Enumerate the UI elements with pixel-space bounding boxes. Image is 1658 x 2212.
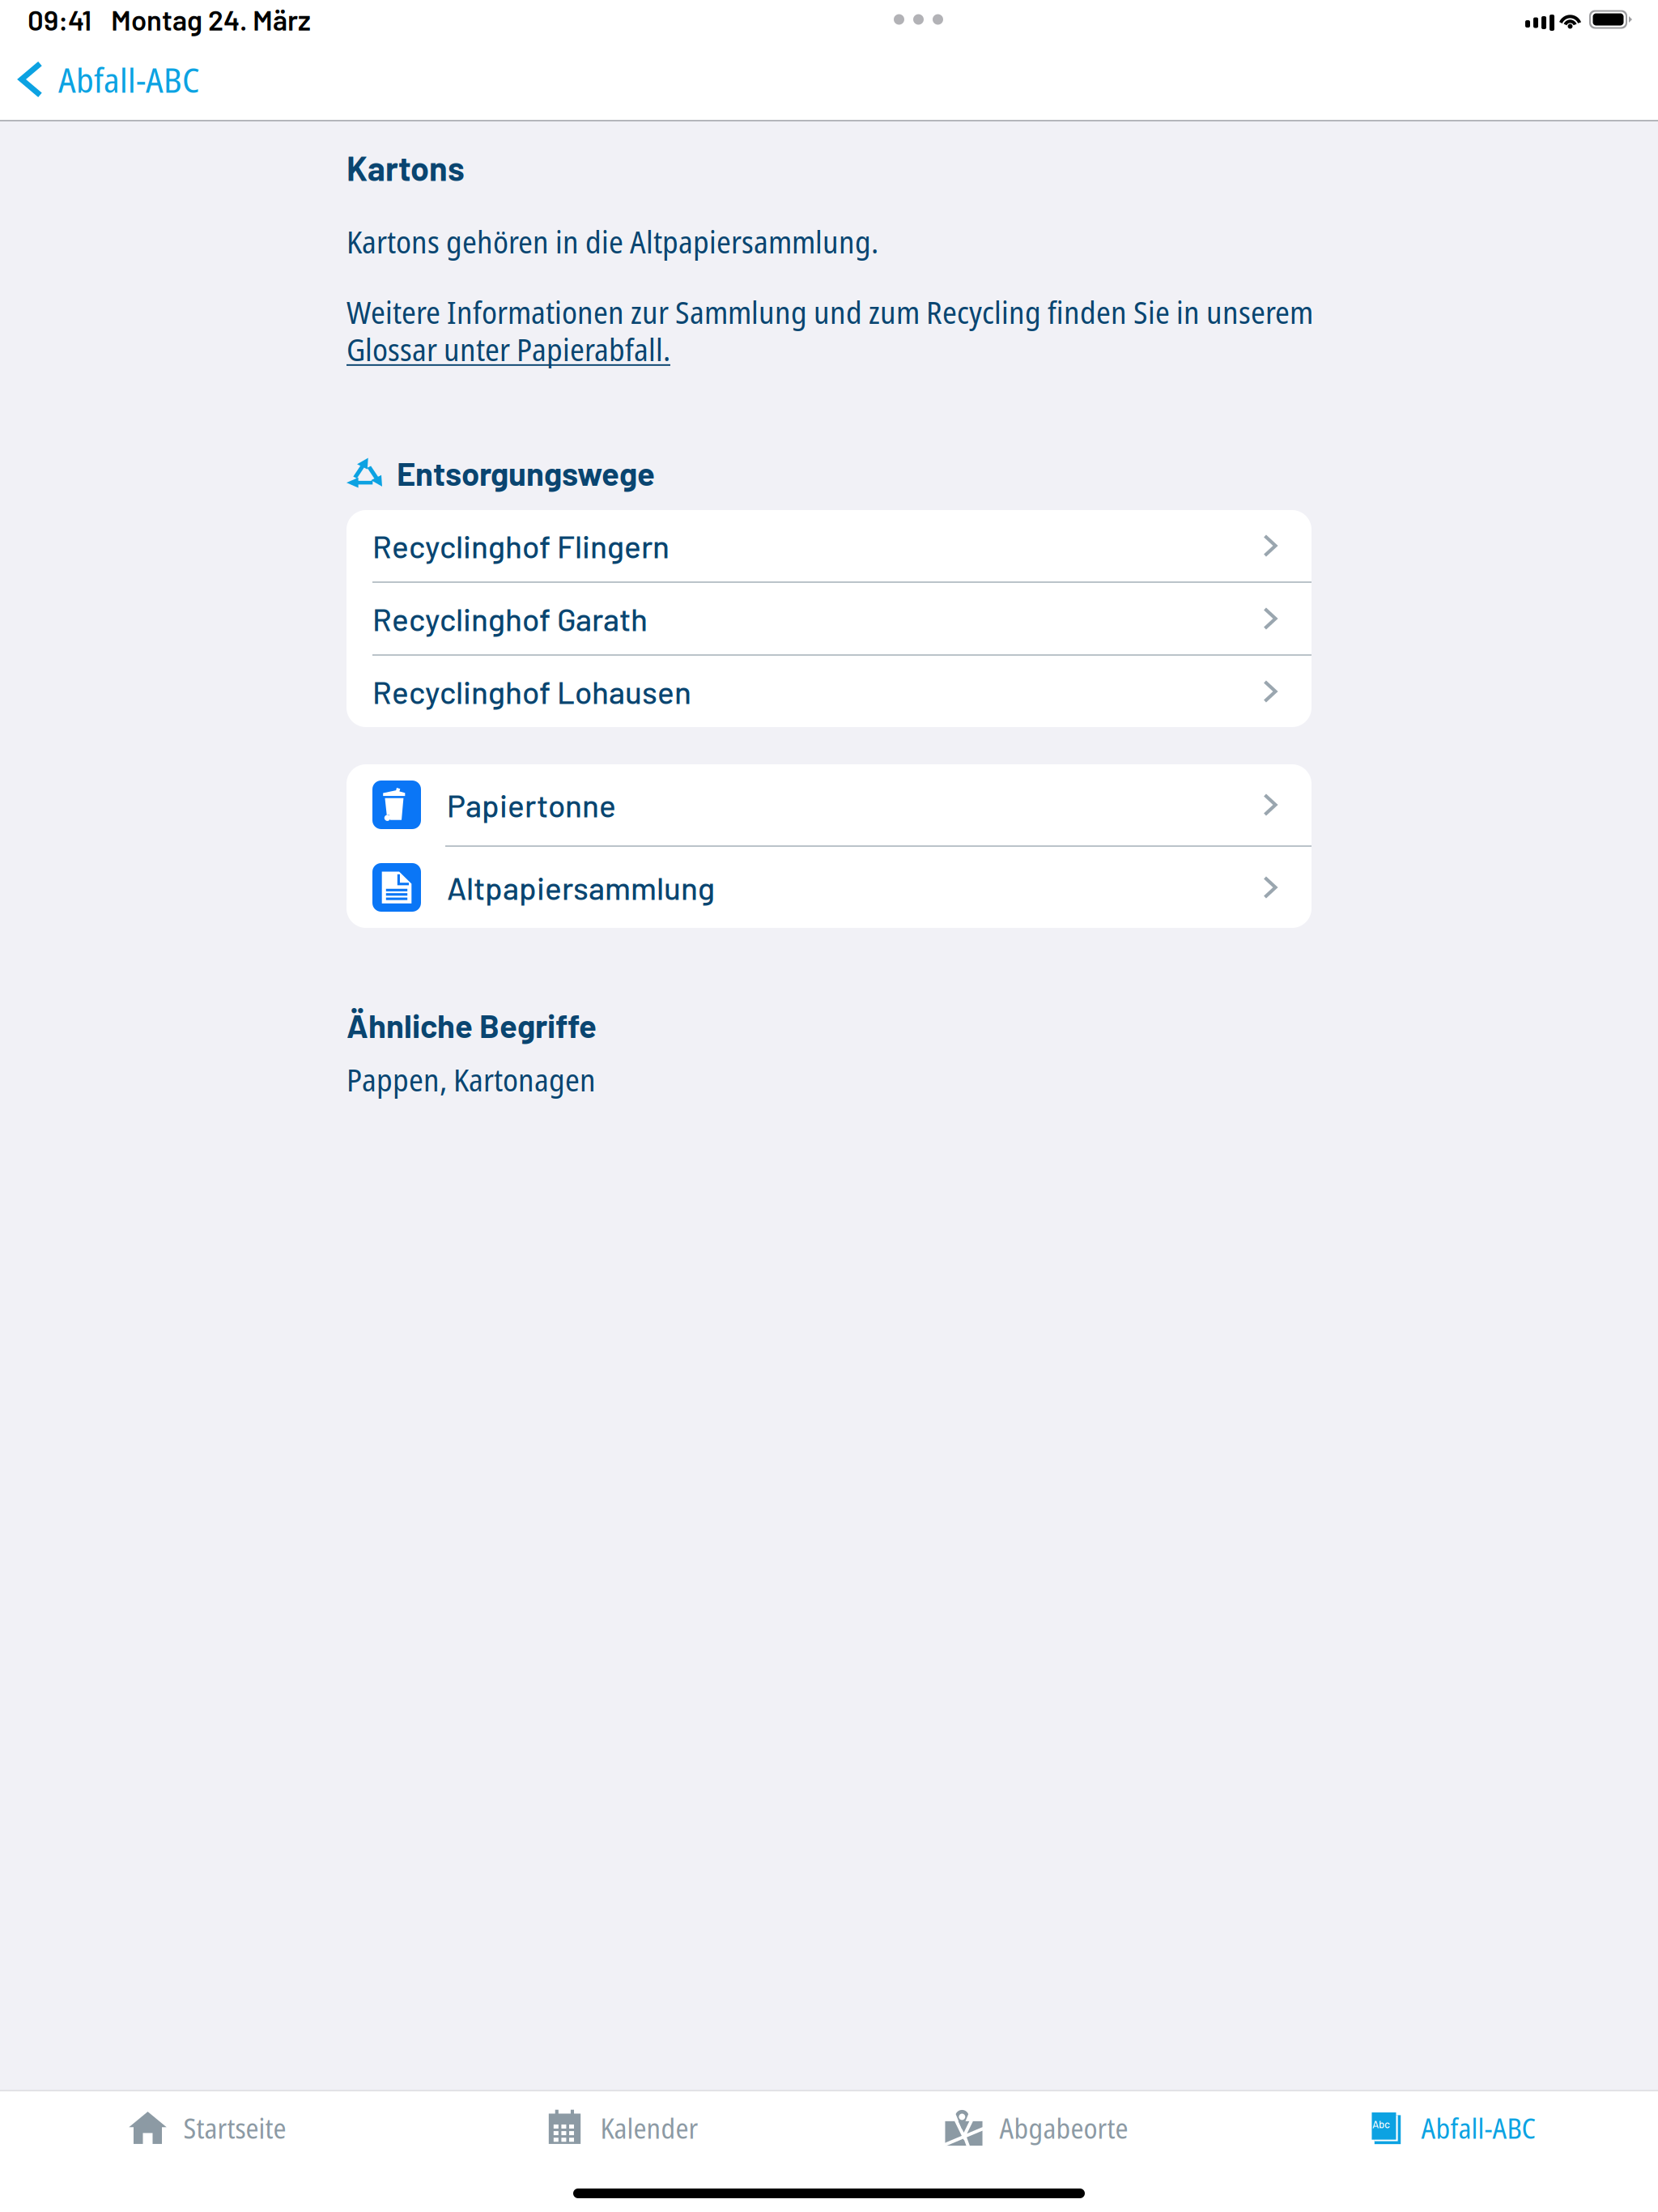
button[interactable]: Recyclinghof Flingern bbox=[346, 510, 1312, 581]
button[interactable]: Kalender bbox=[414, 2091, 829, 2164]
staticText: Entsorgungswege bbox=[397, 453, 655, 492]
staticText: Abc bbox=[1372, 2118, 1390, 2130]
staticText: Weitere Informationen zur Sammlung und z… bbox=[346, 290, 1313, 333]
staticText: Papiertonne bbox=[447, 786, 616, 824]
button[interactable]: Recyclinghof Lohausen bbox=[346, 656, 1312, 727]
staticText: Recyclinghof Flingern bbox=[372, 527, 670, 564]
staticText: Montag 24. März bbox=[111, 3, 311, 36]
staticText: Startseite bbox=[183, 2109, 286, 2147]
staticText: Pappen, Kartonagen bbox=[346, 1058, 596, 1101]
button[interactable]: Startseite bbox=[0, 2091, 414, 2164]
staticText: Glossar unter Papierabfall. bbox=[346, 328, 670, 370]
staticText: Kalender bbox=[600, 2109, 698, 2147]
button[interactable]: Papiertonne bbox=[346, 764, 1312, 845]
button[interactable]: Abgabeorte bbox=[829, 2091, 1243, 2164]
staticText: Abgabeorte bbox=[999, 2109, 1128, 2147]
button[interactable]: Glossar unter Papierabfall. bbox=[346, 334, 670, 364]
button[interactable]: Recyclinghof Garath bbox=[346, 583, 1312, 654]
staticText: Recyclinghof Garath bbox=[372, 600, 648, 637]
button[interactable]: Abfall-ABC bbox=[0, 39, 215, 120]
staticText: Altpapiersammlung bbox=[447, 869, 715, 906]
staticText: 09:41 bbox=[28, 3, 91, 36]
staticText: Recyclinghof Lohausen bbox=[372, 673, 691, 710]
button[interactable]: Abc bbox=[1243, 2091, 1658, 2164]
staticText: Abfall-ABC bbox=[58, 56, 199, 103]
button[interactable]: Altpapiersammlung bbox=[346, 847, 1312, 928]
staticText: Abfall-ABC bbox=[1421, 2109, 1535, 2147]
staticText: Ähnliche Begriffe bbox=[346, 1006, 597, 1044]
staticText: Kartons bbox=[346, 148, 465, 188]
staticText: Kartons gehören in die Altpapiersammlung… bbox=[346, 220, 878, 263]
